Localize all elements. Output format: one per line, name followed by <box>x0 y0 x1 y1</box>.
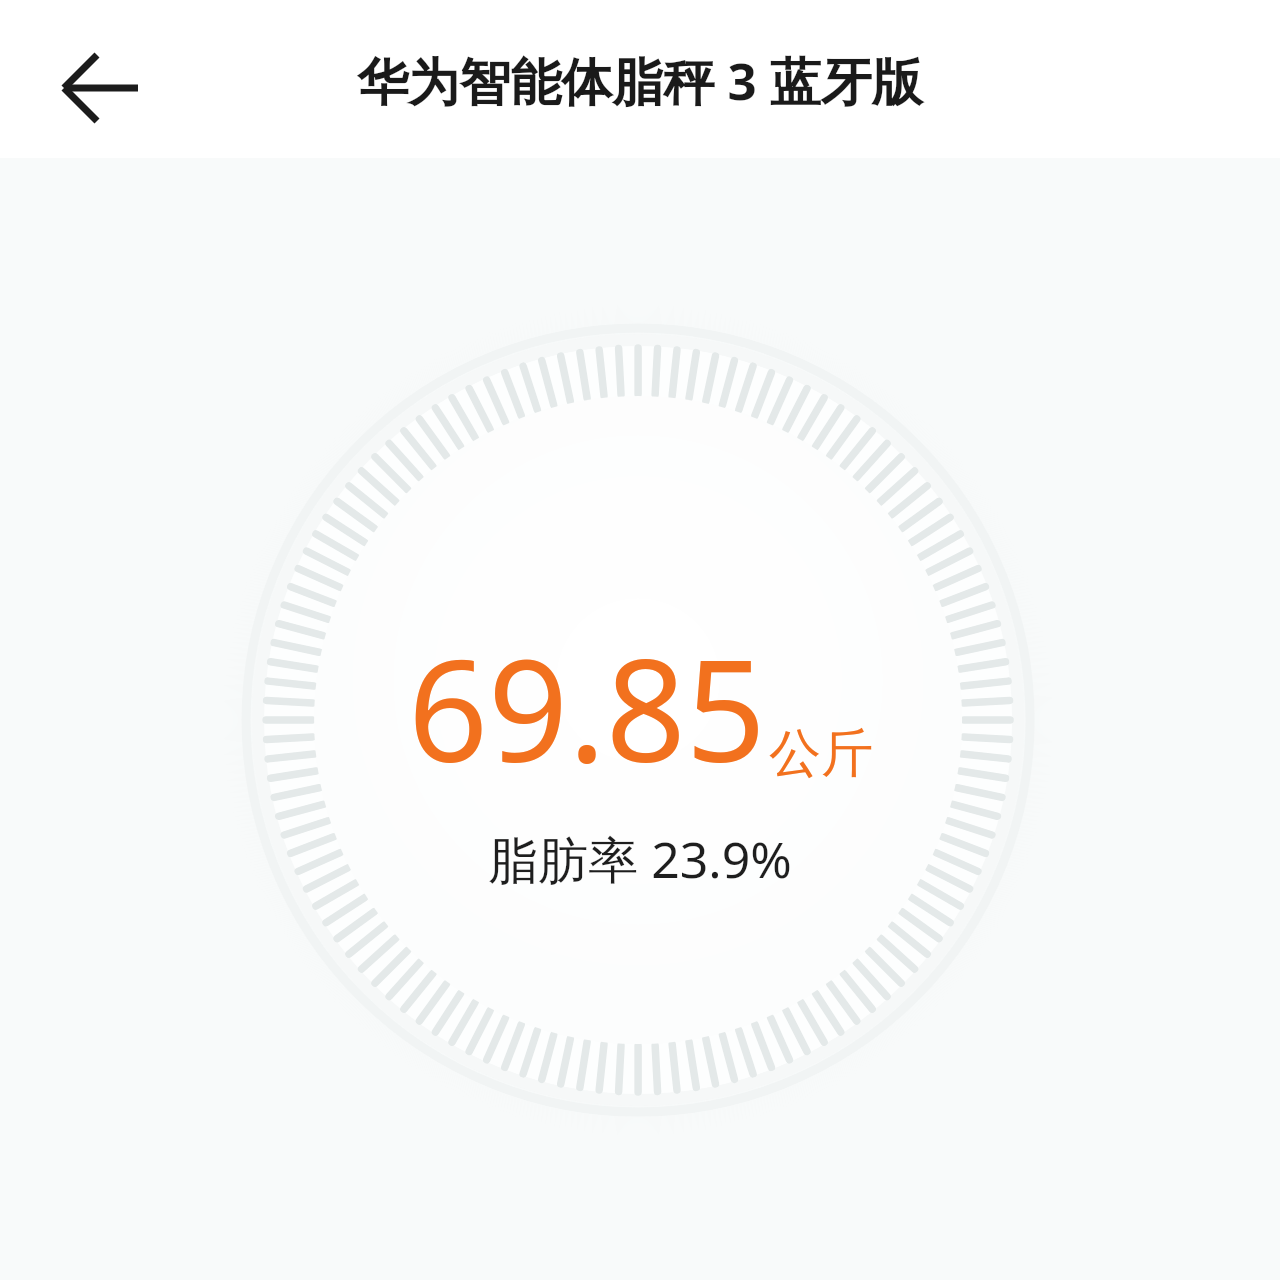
staticText: 脂肪率 23.9% <box>488 825 792 893</box>
staticText: 华为智能体脂秤 3 蓝牙版 <box>357 45 923 115</box>
staticText: 69.85 <box>408 612 766 803</box>
staticText: 公斤 <box>769 721 873 787</box>
button[interactable]: Back <box>30 28 170 148</box>
